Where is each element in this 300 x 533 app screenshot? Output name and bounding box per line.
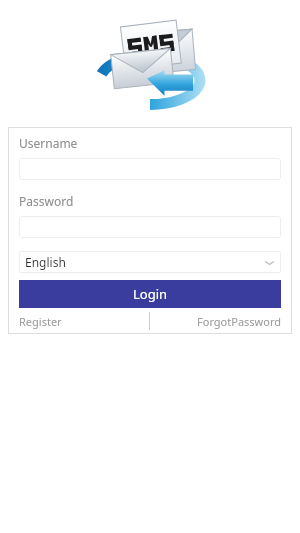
staticText: Password bbox=[19, 193, 74, 209]
button[interactable]: Register bbox=[19, 308, 149, 334]
staticText: Username bbox=[19, 135, 78, 151]
button[interactable]: English bbox=[19, 251, 281, 273]
other: SMS logo bbox=[103, 19, 203, 109]
staticText: English bbox=[25, 254, 264, 270]
button[interactable]: ForgotPassword bbox=[150, 308, 281, 334]
staticText: ForgotPassword bbox=[197, 314, 281, 329]
button[interactable]: Password input bbox=[19, 216, 281, 238]
button[interactable]: Login bbox=[19, 280, 281, 308]
staticText: Login bbox=[133, 285, 168, 303]
button[interactable]: Username input bbox=[19, 158, 281, 180]
staticText: Register bbox=[19, 314, 62, 329]
